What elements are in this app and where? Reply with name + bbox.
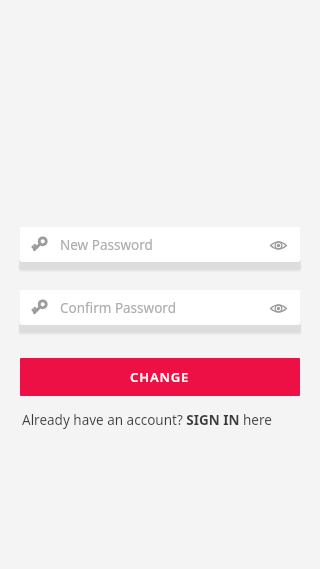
button[interactable]: Show password [266, 296, 290, 320]
button[interactable]: Show password [266, 233, 290, 257]
button[interactable]: CHANGE [20, 358, 300, 396]
button[interactable]: Already have an account? SIGN IN here [22, 411, 298, 429]
staticText: Already have an account? SIGN IN here [22, 411, 272, 429]
staticText: CHANGE [130, 368, 190, 386]
button[interactable]: New Password [20, 227, 300, 262]
staticText: Confirm Password [60, 299, 176, 317]
staticText: New Password [60, 236, 153, 254]
button[interactable]: Confirm Password [20, 290, 300, 325]
